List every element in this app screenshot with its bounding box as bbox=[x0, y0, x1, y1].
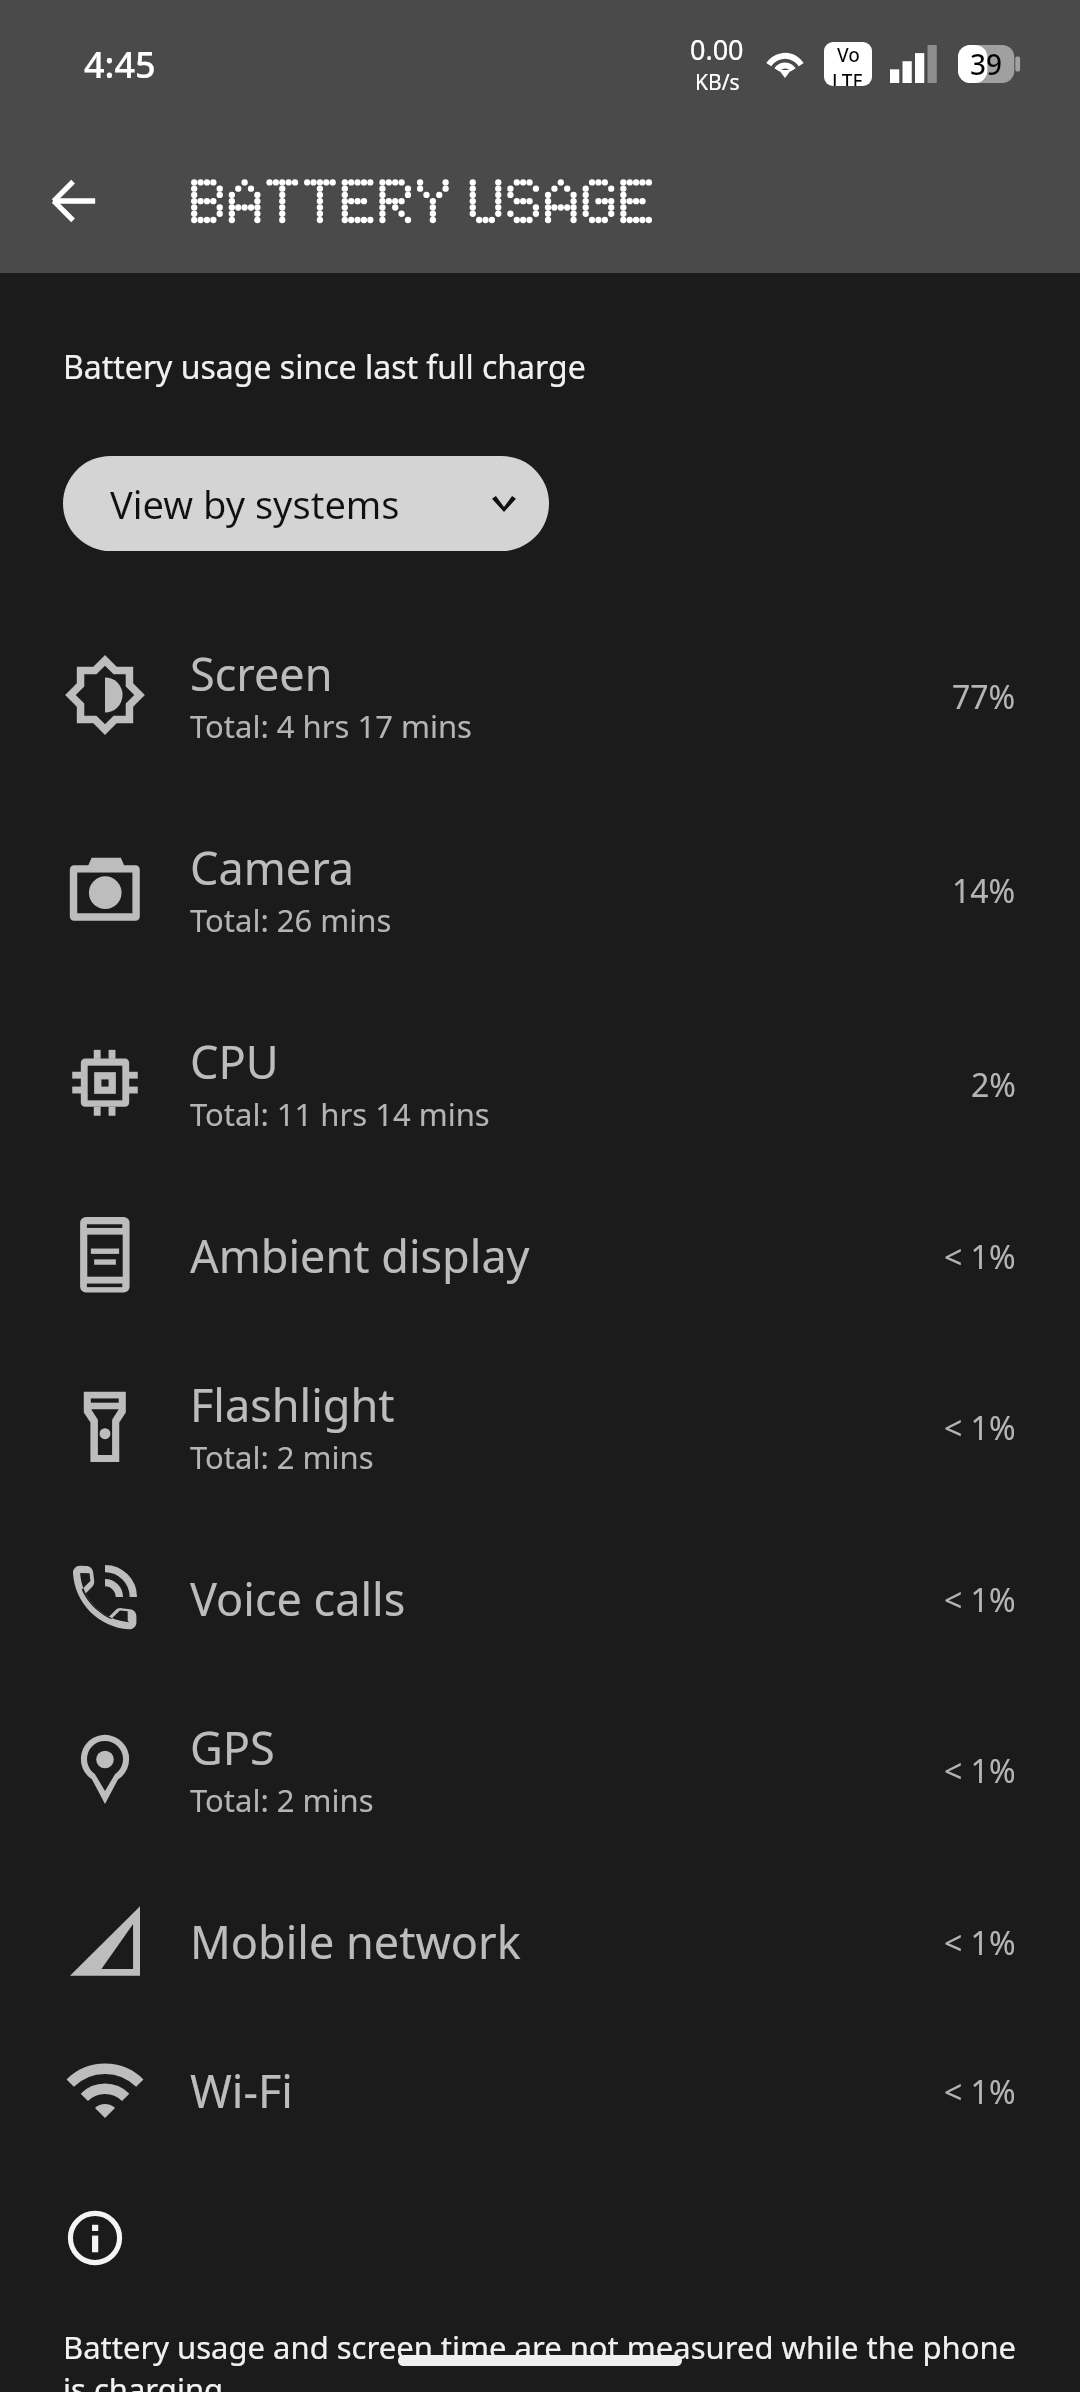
staticText: KB/s bbox=[695, 68, 740, 97]
button[interactable]: View by systems bbox=[63, 456, 549, 551]
staticText: < 1% bbox=[944, 1406, 1016, 1450]
staticText: CPU bbox=[190, 1031, 279, 1092]
staticText: Total: 26 mins bbox=[190, 899, 392, 941]
staticText: Battery usage and screen time are not me… bbox=[63, 2326, 1017, 2368]
staticText: Voice calls bbox=[190, 1568, 406, 1629]
staticText: View by systems bbox=[110, 478, 400, 530]
button[interactable]: Camera bbox=[0, 800, 1080, 994]
button[interactable]: Information bbox=[55, 2198, 135, 2278]
button[interactable]: Back bbox=[30, 157, 118, 245]
staticText: 39 bbox=[970, 45, 1003, 83]
staticText: Screen bbox=[190, 643, 333, 704]
staticText: < 1% bbox=[944, 1235, 1016, 1279]
staticText: Total: 11 hrs 14 mins bbox=[190, 1093, 490, 1135]
staticText: GPS bbox=[190, 1717, 275, 1778]
button[interactable]: Wi-Fi bbox=[0, 2023, 1080, 2172]
staticText: Battery usage since last full charge bbox=[63, 345, 586, 389]
staticText: Total: 2 mins bbox=[190, 1436, 374, 1478]
staticText: Mobile network bbox=[190, 1911, 521, 1972]
staticText: 2% bbox=[971, 1063, 1016, 1107]
staticText: < 1% bbox=[944, 1749, 1016, 1793]
staticText: Ambient display bbox=[190, 1225, 530, 1286]
staticText: Flashlight bbox=[190, 1374, 395, 1435]
staticText: Total: 2 mins bbox=[190, 1779, 374, 1821]
staticText: LTE bbox=[832, 68, 864, 86]
button[interactable]: Voice calls bbox=[0, 1531, 1080, 1680]
button[interactable]: CPU bbox=[0, 994, 1080, 1188]
staticText: 77% bbox=[952, 675, 1016, 719]
staticText: < 1% bbox=[944, 1921, 1016, 1965]
staticText: Camera bbox=[190, 837, 355, 898]
button[interactable]: Mobile network bbox=[0, 1874, 1080, 2023]
button[interactable]: GPS bbox=[0, 1680, 1080, 1874]
staticText: Wi-Fi bbox=[190, 2060, 293, 2121]
staticText: is charging bbox=[63, 2368, 224, 2392]
button[interactable]: Screen bbox=[0, 606, 1080, 800]
staticText: < 1% bbox=[944, 1578, 1016, 1622]
staticText: 4:45 bbox=[84, 40, 156, 89]
button[interactable]: Ambient display bbox=[0, 1188, 1080, 1337]
staticText: < 1% bbox=[944, 2070, 1016, 2114]
staticText: 0.00 bbox=[690, 31, 744, 68]
staticText: Total: 4 hrs 17 mins bbox=[190, 705, 472, 747]
staticText: 14% bbox=[952, 869, 1016, 913]
staticText: Vo bbox=[837, 42, 860, 68]
button[interactable]: Flashlight bbox=[0, 1337, 1080, 1531]
